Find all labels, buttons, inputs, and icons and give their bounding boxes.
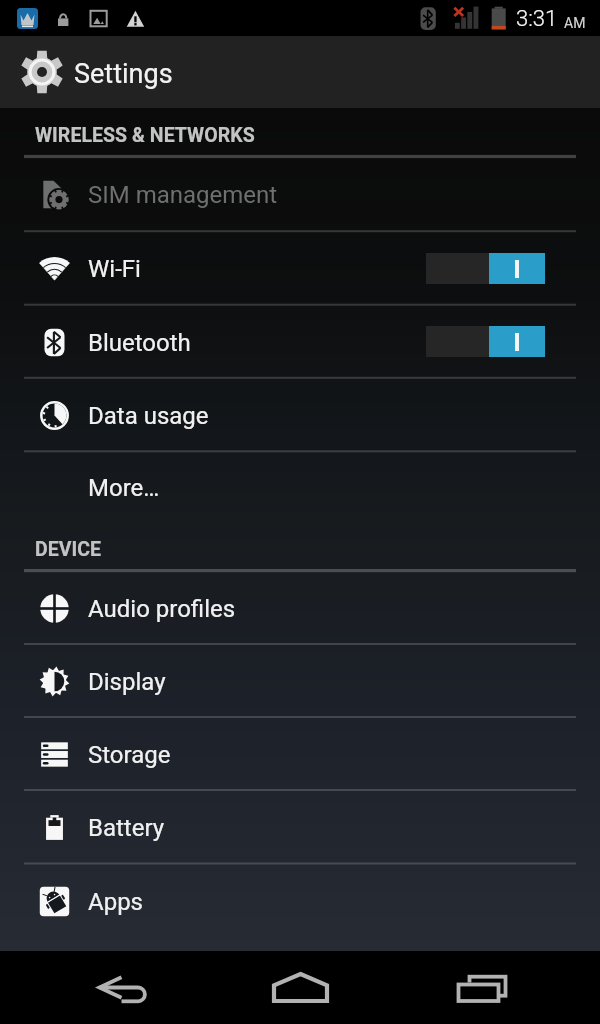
button[interactable]: Back — [44, 951, 204, 1024]
staticText: Data usage — [88, 402, 209, 430]
button[interactable]: Battery — [0, 790, 600, 864]
button[interactable]: SIM management — [0, 157, 600, 231]
button[interactable]: Display — [0, 644, 600, 717]
staticText: Battery — [88, 814, 165, 842]
staticText: More… — [88, 474, 160, 502]
button[interactable]: Recents — [432, 951, 552, 1024]
button[interactable]: Home — [250, 951, 350, 1024]
staticText: WIRELESS & NETWORKS — [35, 124, 255, 147]
button[interactable] — [426, 326, 545, 357]
staticText: Bluetooth — [88, 329, 191, 357]
button[interactable]: Wi-Fi — [0, 231, 600, 305]
staticText: Apps — [88, 888, 143, 916]
button[interactable]: Apps — [0, 864, 600, 937]
staticText: SIM management — [88, 181, 278, 209]
button[interactable]: More… — [0, 451, 600, 523]
button[interactable]: Settings — [0, 36, 600, 108]
staticText: AM — [564, 15, 586, 31]
staticText: Audio profiles — [88, 595, 236, 623]
staticText: DEVICE — [35, 538, 102, 561]
staticText: Storage — [88, 741, 171, 769]
button[interactable]: Storage — [0, 717, 600, 790]
button[interactable]: Bluetooth — [0, 305, 600, 378]
button[interactable]: Data usage — [0, 378, 600, 451]
staticText: 3:31 — [516, 6, 558, 32]
staticText: Wi-Fi — [88, 255, 141, 283]
button[interactable]: Audio profiles — [0, 571, 600, 644]
button[interactable] — [426, 253, 545, 284]
staticText: Settings — [74, 58, 173, 90]
staticText: Display — [88, 668, 166, 696]
